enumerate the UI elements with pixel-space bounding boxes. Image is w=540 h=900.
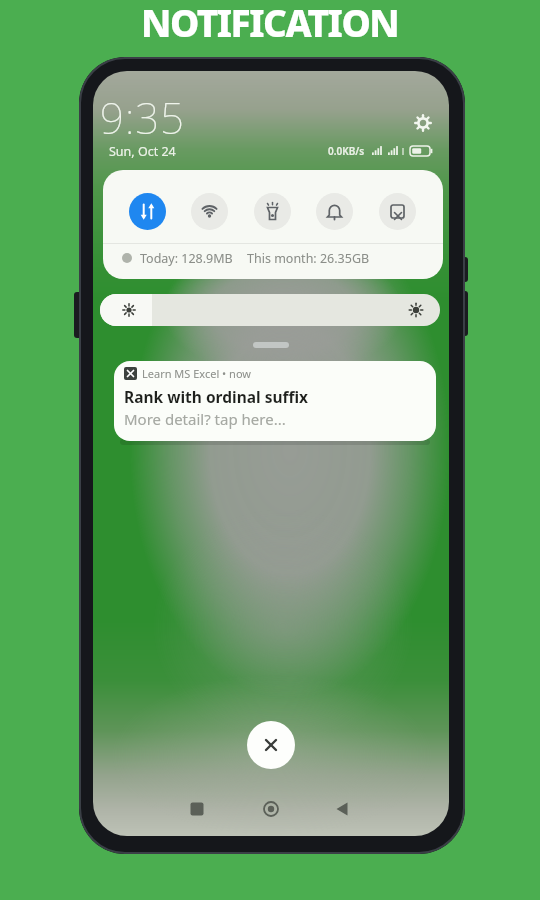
staticText: 9:35 [100,89,186,146]
button[interactable] [411,111,435,135]
staticText: 0.0KB/s [328,144,365,158]
staticText: This month: 26.35GB [247,250,370,267]
button[interactable] [254,193,291,230]
staticText: More detail? tap here... [124,409,286,429]
button[interactable]: Learn MS Excel • now [114,361,436,441]
button[interactable] [257,795,285,823]
staticText: Learn MS Excel • now [142,366,251,381]
staticText: Rank with ordinal suffix [124,386,309,407]
button[interactable] [328,795,356,823]
staticText: Sun, Oct 24 [109,143,176,160]
button[interactable] [247,721,295,769]
staticText: NOTIFICATION [141,0,399,47]
staticText: Today: 128.9MB [140,250,233,267]
button[interactable] [379,193,416,230]
button[interactable] [183,795,211,823]
button[interactable] [100,294,440,326]
button[interactable] [191,193,228,230]
button[interactable] [316,193,353,230]
button[interactable] [129,193,166,230]
